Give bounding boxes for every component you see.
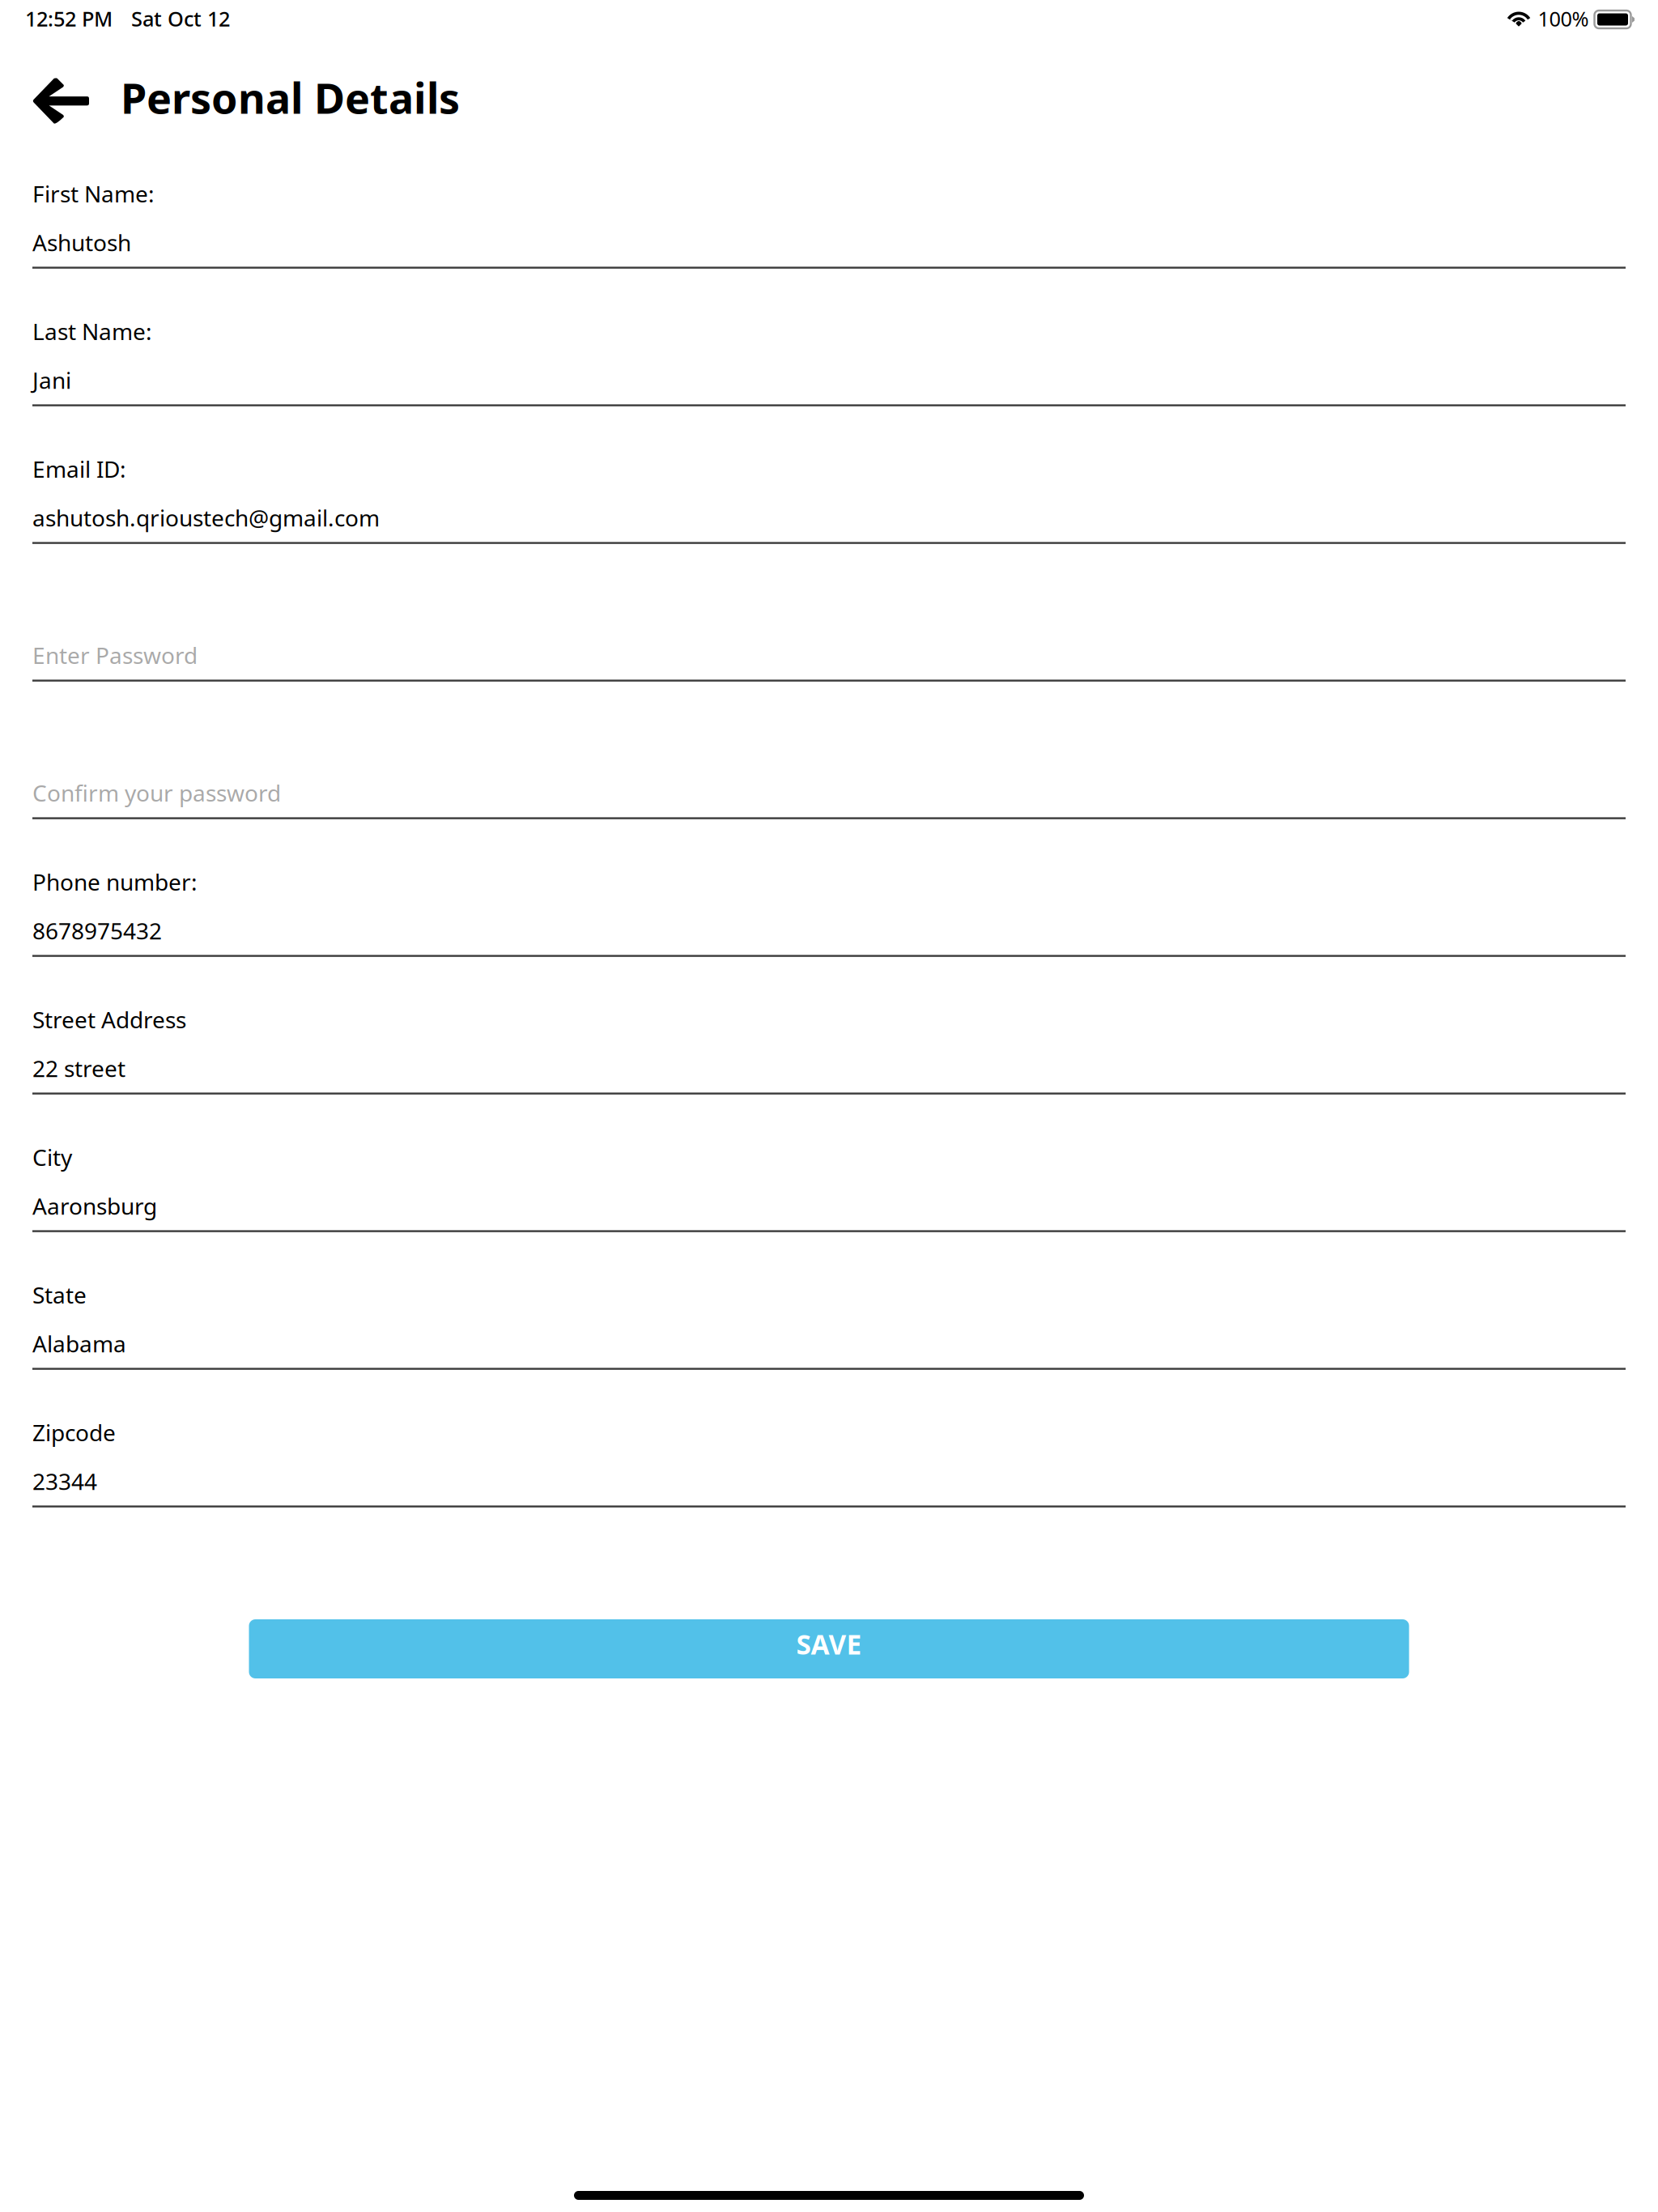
staticText: 100% <box>1538 5 1589 32</box>
staticText: Email ID: <box>32 454 126 484</box>
staticText: Ashutosh <box>32 227 131 257</box>
staticText: Confirm your password <box>32 778 281 808</box>
staticText: 22 street <box>32 1053 125 1083</box>
staticText: Enter Password <box>32 640 198 670</box>
button[interactable]: Email ID: <box>32 406 1626 544</box>
button[interactable]: State <box>32 1232 1626 1370</box>
staticText: Zipcode <box>32 1417 116 1448</box>
button[interactable]: First Name: <box>32 131 1626 269</box>
staticText: Alabama <box>32 1328 126 1359</box>
staticText: Street Address <box>32 1004 186 1035</box>
staticText: Last Name: <box>32 316 152 346</box>
staticText: Jani <box>32 365 71 395</box>
button[interactable]: Street Address <box>32 957 1626 1095</box>
staticText: City <box>32 1142 72 1172</box>
staticText: Personal Details <box>121 70 460 125</box>
staticText: State <box>32 1280 87 1310</box>
button[interactable]: Phone number: <box>32 819 1626 957</box>
button[interactable]: SAVE <box>249 1619 1409 1678</box>
button[interactable]: Confirm your password <box>32 682 1626 819</box>
button[interactable]: Zipcode <box>32 1370 1626 1507</box>
staticText: 23344 <box>32 1466 97 1496</box>
button[interactable]: Last Name: <box>32 269 1626 406</box>
staticText: Aaronsburg <box>32 1191 157 1221</box>
staticText: First Name: <box>32 179 155 209</box>
staticText: Phone number: <box>32 867 198 897</box>
button[interactable]: Enter Password <box>32 544 1626 682</box>
staticText: Sat Oct 12 <box>131 5 230 32</box>
staticText: SAVE <box>796 1626 862 1662</box>
button[interactable]: City <box>32 1095 1626 1232</box>
button[interactable]: Back <box>0 37 116 131</box>
staticText: 8678975432 <box>32 916 162 946</box>
staticText: ashutosh.qrioustech@gmail.com <box>32 503 380 533</box>
staticText: 12:52 PM <box>25 5 113 32</box>
